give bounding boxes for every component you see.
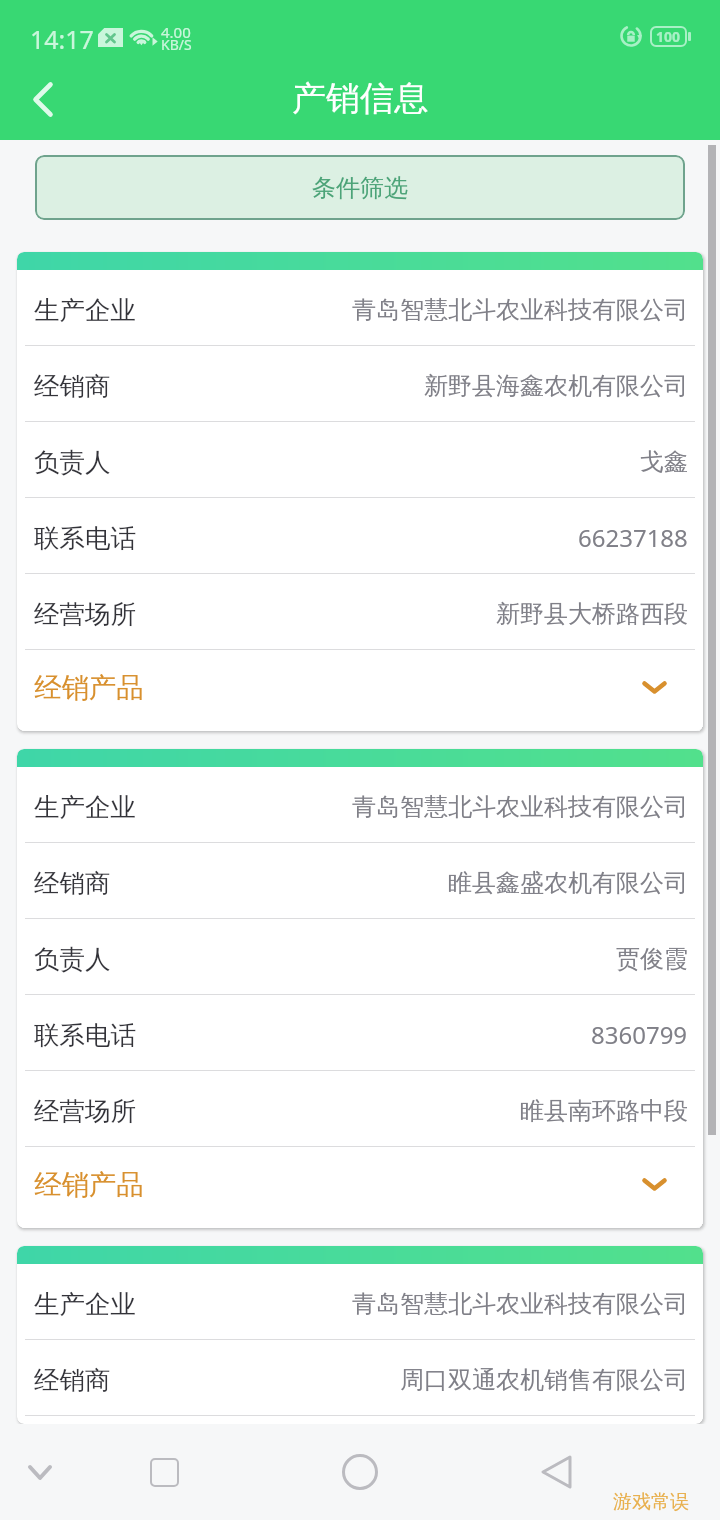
staticText: 周口双通农机销售有限公司 [400,1365,688,1395]
staticText: 经营场所 [34,1095,136,1127]
button[interactable]: Hide keyboard [0,1424,80,1520]
button[interactable]: 条件筛选 [35,155,685,220]
staticText: 100 [656,27,681,46]
staticText: 青岛智慧北斗农业科技有限公司 [352,295,688,325]
button[interactable]: 经销产品 [17,1147,703,1228]
staticText: 经销商 [34,1364,111,1396]
button[interactable]: Back [496,1424,616,1520]
staticText: 条件筛选 [312,173,408,203]
staticText: 贾俊霞 [616,944,688,974]
staticText: 经销商 [34,867,111,899]
staticText: 66237188 [578,521,688,554]
button[interactable]: 联系电话 [17,995,703,1070]
button[interactable]: 生产企业 [17,270,703,345]
button[interactable]: 经销产品 [17,650,703,731]
staticText: KB/S [161,35,192,54]
staticText: 青岛智慧北斗农业科技有限公司 [352,792,688,822]
button[interactable]: 负责人 [17,919,703,994]
staticText: 产销信息 [0,77,720,120]
button[interactable]: Recents [104,1424,224,1520]
staticText: 负责人 [34,446,111,478]
staticText: 8360799 [591,1018,688,1051]
button[interactable]: 经销商 [17,843,703,918]
staticText: 游戏常误 [613,1490,689,1514]
staticText: 新野县海鑫农机有限公司 [424,371,688,401]
staticText: 经销产品 [34,1168,144,1203]
staticText: 经销产品 [34,671,144,706]
staticText: 睢县南环路中段 [520,1096,688,1126]
button[interactable]: 经销商 [17,346,703,421]
button[interactable]: 生产企业 [17,1264,703,1339]
staticText: 联系电话 [34,1019,136,1051]
staticText: 睢县鑫盛农机有限公司 [448,868,688,898]
button[interactable]: 经营场所 [17,1071,703,1146]
button[interactable]: Home [300,1424,420,1520]
staticText: 生产企业 [34,1288,136,1320]
staticText: 新野县大桥路西段 [496,599,688,629]
staticText: 戈鑫 [640,447,688,477]
staticText: 经营场所 [34,598,136,630]
button[interactable]: 经营场所 [17,574,703,649]
button[interactable]: Back [8,62,78,136]
staticText: 生产企业 [34,791,136,823]
staticText: 14:17 [30,22,94,56]
button[interactable]: 负责人 [17,422,703,497]
staticText: 青岛智慧北斗农业科技有限公司 [352,1289,688,1319]
staticText: 生产企业 [34,294,136,326]
button[interactable]: 生产企业 [17,767,703,842]
staticText: 经销商 [34,370,111,402]
staticText: 4.00 [161,22,191,42]
staticText: 负责人 [34,943,111,975]
staticText: 联系电话 [34,522,136,554]
button[interactable]: 经销商 [17,1340,703,1415]
button[interactable]: 联系电话 [17,498,703,573]
